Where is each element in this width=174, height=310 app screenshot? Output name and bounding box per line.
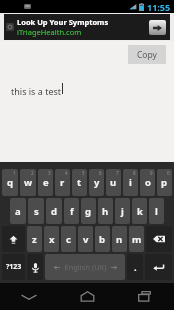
staticText: c: [66, 233, 71, 246]
button[interactable]: Shift: [2, 226, 25, 252]
button[interactable]: s: [28, 198, 44, 224]
button[interactable]: x: [44, 226, 59, 252]
staticText: 11:55: [147, 1, 171, 13]
button[interactable]: u: [106, 169, 121, 196]
button[interactable]: t: [72, 169, 87, 196]
button[interactable]: Voice input: [27, 254, 43, 280]
button[interactable]: m: [129, 226, 144, 252]
button[interactable]: v: [78, 226, 93, 252]
button[interactable]: l: [149, 198, 164, 224]
staticText: iTriageHealth.com: [17, 27, 82, 37]
button[interactable]: o: [140, 169, 155, 196]
staticText: 3: [48, 170, 51, 176]
staticText: i: [129, 176, 132, 189]
button[interactable]: Copy: [128, 45, 166, 64]
button[interactable]: e: [38, 169, 53, 196]
button[interactable]: Open ad: [149, 20, 166, 35]
button[interactable]: a: [10, 198, 26, 224]
staticText: v: [83, 233, 89, 246]
button[interactable]: i: [123, 169, 138, 196]
staticText: .: [134, 261, 137, 274]
staticText: l: [155, 205, 158, 218]
button[interactable]: c: [61, 226, 76, 252]
staticText: this is a test: [11, 85, 62, 97]
staticText: r: [60, 176, 65, 189]
staticText: z: [32, 233, 37, 246]
staticText: m: [132, 233, 142, 246]
button[interactable]: Enter: [145, 254, 172, 280]
button[interactable]: h: [98, 198, 113, 224]
staticText: j: [121, 205, 124, 218]
staticText: 4: [65, 170, 68, 176]
staticText: a: [15, 205, 21, 218]
staticText: English (UK): [64, 262, 107, 272]
staticText: 2: [31, 170, 34, 176]
staticText: s: [34, 205, 39, 218]
staticText: 5: [82, 170, 85, 176]
staticText: q: [7, 176, 14, 189]
button[interactable]: Space: [45, 254, 125, 280]
button[interactable]: ?123: [2, 254, 25, 280]
staticText: w: [24, 176, 33, 189]
staticText: Look Up Your Symptoms: [17, 17, 109, 27]
button[interactable]: Hide keyboard: [0, 283, 58, 310]
button[interactable]: n: [112, 226, 127, 252]
button[interactable]: w: [20, 169, 36, 196]
button[interactable]: r: [55, 169, 70, 196]
button[interactable]: b: [95, 226, 110, 252]
staticText: 6: [99, 170, 102, 176]
staticText: y: [94, 176, 100, 189]
button[interactable]: Recent apps: [116, 283, 174, 310]
staticText: e: [43, 176, 49, 189]
staticText: u: [110, 176, 117, 189]
staticText: 0: [167, 170, 170, 176]
button[interactable]: j: [115, 198, 130, 224]
staticText: t: [77, 176, 82, 189]
button[interactable]: z: [27, 226, 42, 252]
staticText: 9: [150, 170, 153, 176]
button[interactable]: Delete: [146, 226, 172, 252]
staticText: Copy: [137, 49, 157, 61]
button[interactable]: y: [89, 169, 104, 196]
staticText: 7: [116, 170, 119, 176]
button[interactable]: f: [64, 198, 79, 224]
staticText: ?123: [6, 262, 22, 272]
button[interactable]: p: [157, 169, 172, 196]
button[interactable]: q: [2, 169, 18, 196]
staticText: g: [85, 205, 92, 218]
staticText: 8: [133, 170, 136, 176]
button[interactable]: d: [46, 198, 62, 224]
button[interactable]: k: [132, 198, 147, 224]
staticText: 1: [13, 170, 16, 176]
staticText: b: [99, 233, 106, 246]
button[interactable]: .: [127, 254, 143, 280]
staticText: k: [137, 205, 143, 218]
staticText: x: [49, 233, 55, 246]
staticText: h: [102, 205, 109, 218]
staticText: p: [161, 176, 168, 189]
staticText: d: [51, 205, 58, 218]
button[interactable]: Look Up Your Symptoms: [4, 14, 170, 40]
button[interactable]: g: [81, 198, 96, 224]
staticText: o: [145, 176, 151, 189]
staticText: f: [70, 205, 74, 218]
button[interactable]: Home: [58, 283, 116, 310]
staticText: n: [116, 233, 123, 246]
